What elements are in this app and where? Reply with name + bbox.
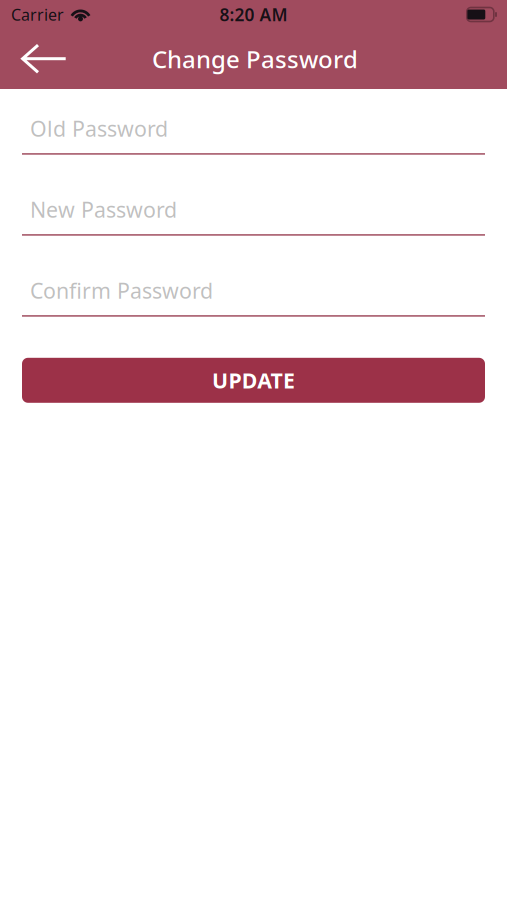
- button[interactable]: Confirm Password: [22, 278, 485, 317]
- staticText: Carrier: [11, 4, 64, 25]
- button[interactable]: Back: [0, 29, 81, 89]
- button[interactable]: UPDATE: [22, 358, 485, 403]
- staticText: Confirm Password: [30, 276, 213, 305]
- staticText: UPDATE: [212, 366, 295, 394]
- staticText: Old Password: [30, 114, 168, 143]
- staticText: New Password: [30, 195, 177, 224]
- button[interactable]: Old Password: [22, 116, 485, 155]
- staticText: 8:20 AM: [219, 3, 287, 26]
- staticText: Change Password: [152, 43, 358, 75]
- button[interactable]: New Password: [22, 197, 485, 236]
